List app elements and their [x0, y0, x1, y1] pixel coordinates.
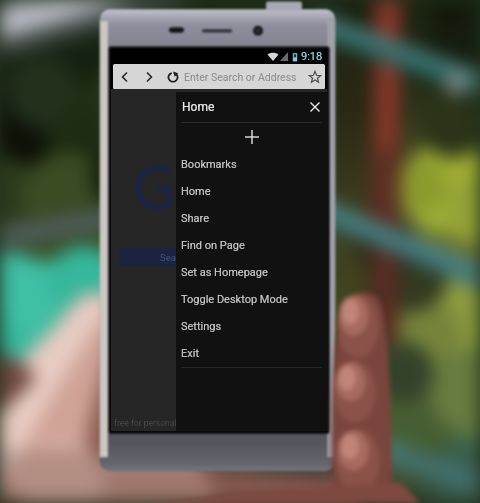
button[interactable]: New tab — [176, 129, 328, 145]
button[interactable]: Settings — [176, 313, 328, 340]
staticText: Share — [181, 212, 210, 225]
button[interactable]: Share — [176, 205, 328, 232]
staticText: Enter Search or Address — [184, 71, 297, 83]
button[interactable]: Bookmarks — [176, 151, 328, 178]
staticText: G — [132, 145, 176, 227]
button[interactable]: Home — [176, 92, 328, 121]
staticText: 9:18 — [301, 50, 323, 63]
button[interactable]: Enter Search or Address — [184, 64, 304, 89]
staticText: Exit — [181, 347, 199, 360]
staticText: Search — [160, 252, 190, 263]
button[interactable]: Exit — [176, 340, 328, 367]
staticText: Settings — [181, 320, 222, 333]
button[interactable]: Find on Page — [176, 232, 328, 259]
staticText: Home — [181, 185, 211, 198]
staticText: Toggle Desktop Mode — [181, 293, 288, 306]
button[interactable]: Toggle Desktop Mode — [176, 286, 328, 313]
button[interactable]: Close tab — [302, 94, 328, 120]
button[interactable]: Reload — [161, 64, 184, 89]
staticText: free for personal use — [114, 418, 193, 428]
staticText: Home — [182, 100, 215, 114]
button[interactable]: Home — [176, 178, 328, 205]
button[interactable]: Forward — [137, 64, 161, 89]
staticText: Bookmarks — [181, 158, 237, 171]
button[interactable]: Back — [113, 64, 137, 89]
button[interactable]: Search — [119, 248, 231, 266]
button[interactable]: Set as Homepage — [176, 259, 328, 286]
staticText: Set as Homepage — [181, 266, 268, 279]
staticText: Find on Page — [181, 239, 245, 252]
button[interactable]: Bookmark — [304, 64, 325, 89]
